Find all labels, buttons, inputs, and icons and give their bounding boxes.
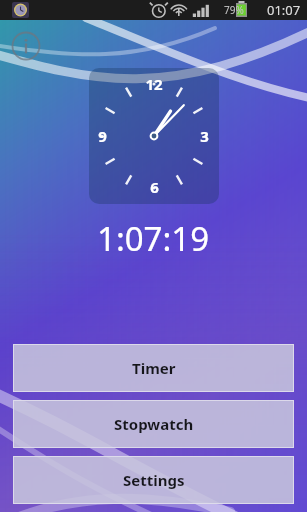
staticText: Timer	[132, 358, 176, 378]
button[interactable]: Timer	[13, 344, 294, 392]
staticText: 1:07:19	[97, 216, 210, 261]
button[interactable]: Stopwatch	[13, 400, 294, 448]
staticText: 3	[200, 126, 209, 146]
button[interactable]: Settings	[13, 456, 294, 504]
button[interactable]: Info	[8, 28, 44, 64]
staticText: 6	[150, 177, 159, 197]
staticText: 9	[98, 126, 107, 146]
button[interactable]: Analog clock	[89, 68, 219, 204]
staticText: 79%	[224, 3, 244, 17]
staticText: 01:07	[267, 1, 301, 19]
staticText: 12	[145, 74, 163, 94]
staticText: Stopwatch	[114, 414, 194, 434]
staticText: Settings	[123, 470, 185, 490]
